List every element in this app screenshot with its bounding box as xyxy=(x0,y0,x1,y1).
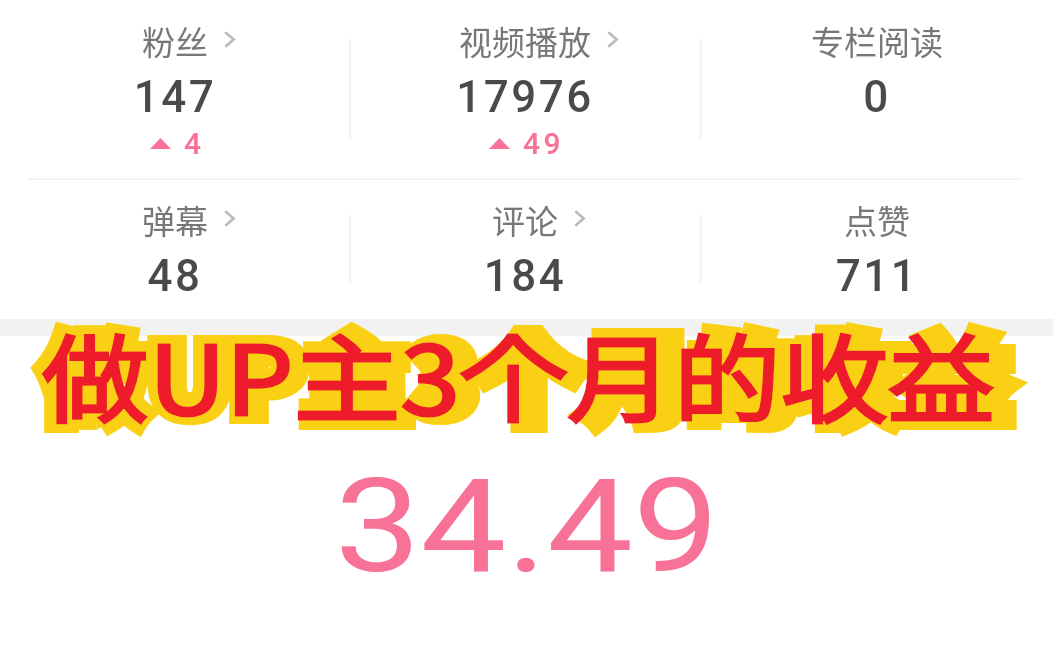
staticText: 49 xyxy=(523,126,565,161)
staticText: 34.49 xyxy=(335,450,719,603)
staticText: 做UP主3个月的收益 xyxy=(42,305,995,443)
staticText: 点赞 xyxy=(824,196,930,244)
button[interactable]: 视频播放 xyxy=(350,11,700,159)
staticText: 专栏阅读 xyxy=(791,17,963,65)
staticText: 711 xyxy=(702,250,1052,302)
other: 视频播放 xyxy=(607,31,618,48)
button[interactable]: 评论 xyxy=(350,190,700,282)
button[interactable]: 弹幕 xyxy=(0,190,350,282)
staticText: 147 xyxy=(0,71,350,123)
other: 弹幕 xyxy=(224,210,235,227)
staticText: 视频播放 xyxy=(439,17,611,65)
staticText: 弹幕 xyxy=(122,196,228,244)
staticText: 0 xyxy=(702,71,1052,123)
staticText: 184 xyxy=(350,250,700,302)
staticText: 17976 xyxy=(350,71,700,123)
other: 评论 xyxy=(574,210,585,227)
other: 粉丝 xyxy=(224,31,235,48)
button[interactable]: 点赞 xyxy=(702,190,1052,282)
staticText: 48 xyxy=(0,250,350,302)
staticText: 4 xyxy=(184,126,205,161)
button[interactable]: 专栏阅读 xyxy=(702,11,1052,103)
staticText: 粉丝 xyxy=(122,17,228,65)
staticText: 评论 xyxy=(472,196,578,244)
staticText: 做UP主3个月的收益 xyxy=(42,305,1011,443)
button[interactable]: 粉丝 xyxy=(0,11,350,159)
